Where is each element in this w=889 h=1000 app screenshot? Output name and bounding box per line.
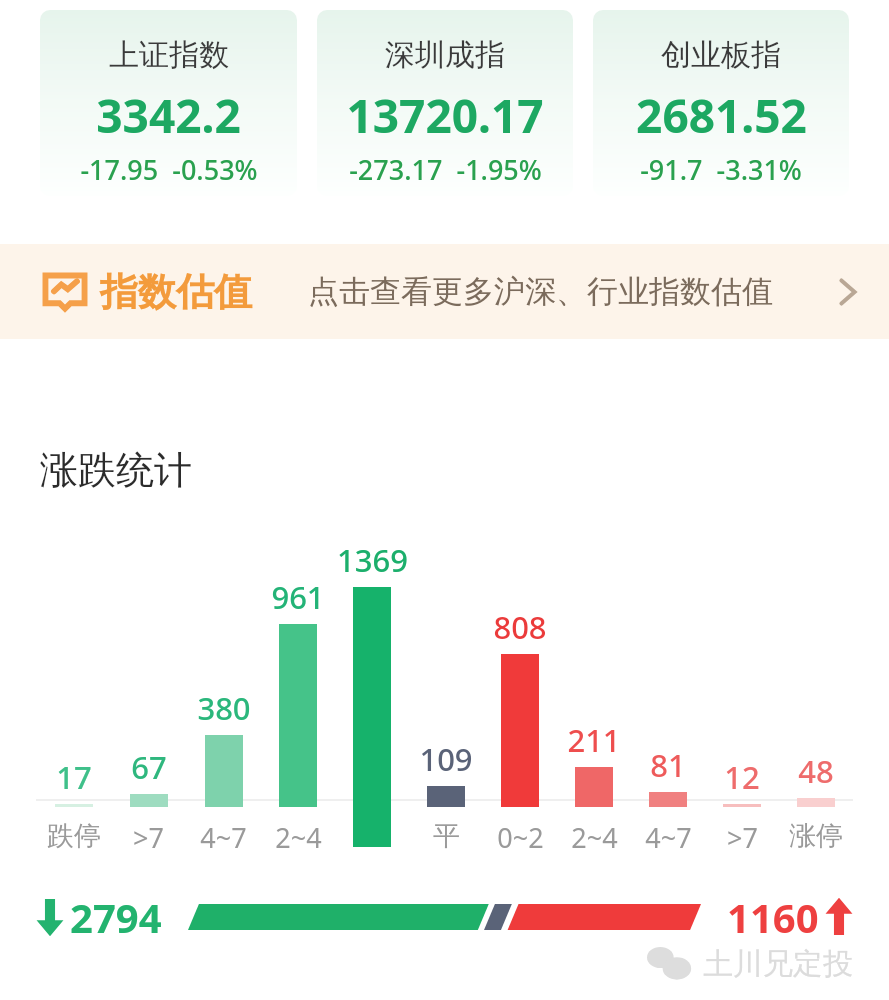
staticText: 13720.17 [346,84,544,147]
staticText: 3342.2 [96,84,241,147]
button[interactable]: 深圳成指 [317,10,573,196]
staticText: 211 [567,719,621,761]
staticText: 创业板指 [661,36,781,74]
staticText: 涨停 [789,819,843,849]
staticText: -17.95 -0.53% [80,151,258,188]
staticText: 12 [724,756,760,798]
staticText: 1369 [337,539,408,581]
staticText: 涨跌统计 [40,446,192,494]
staticText: 2681.52 [636,84,807,147]
staticText: 48 [798,750,834,792]
staticText: 380 [197,687,251,729]
button[interactable]: 指数估值 [0,244,889,339]
other: WeChat [647,947,693,981]
staticText: -91.7 -3.31% [640,151,802,188]
staticText: -273.17 -1.95% [349,151,542,188]
staticText: 2794 [70,890,162,944]
staticText: 4~7 [645,819,692,849]
staticText: 109 [419,738,473,780]
staticText: 808 [493,606,547,648]
button[interactable]: 创业板指 [593,10,849,196]
staticText: 平 [433,819,460,849]
staticText: 上证指数 [109,36,229,74]
other: More [837,274,859,310]
staticText: 961 [271,576,325,618]
staticText: 0~2 [497,819,544,849]
staticText: 67 [131,746,167,788]
staticText: 2~4 [571,819,618,849]
staticText: 17 [56,756,92,798]
staticText: >7 [727,819,758,849]
staticText: 指数估值 [100,268,252,316]
staticText: 4~7 [200,819,247,849]
staticText: 2~4 [275,819,322,849]
staticText: 1160 [727,890,819,944]
staticText: >7 [133,819,164,849]
staticText: 土川兄定投 [703,945,853,983]
staticText: 跌停 [47,819,101,849]
staticText: 深圳成指 [385,36,505,74]
button[interactable]: 上证指数 [40,10,297,196]
staticText: 81 [650,744,686,786]
staticText: 点击查看更多沪深、行业指数估值 [308,272,773,311]
